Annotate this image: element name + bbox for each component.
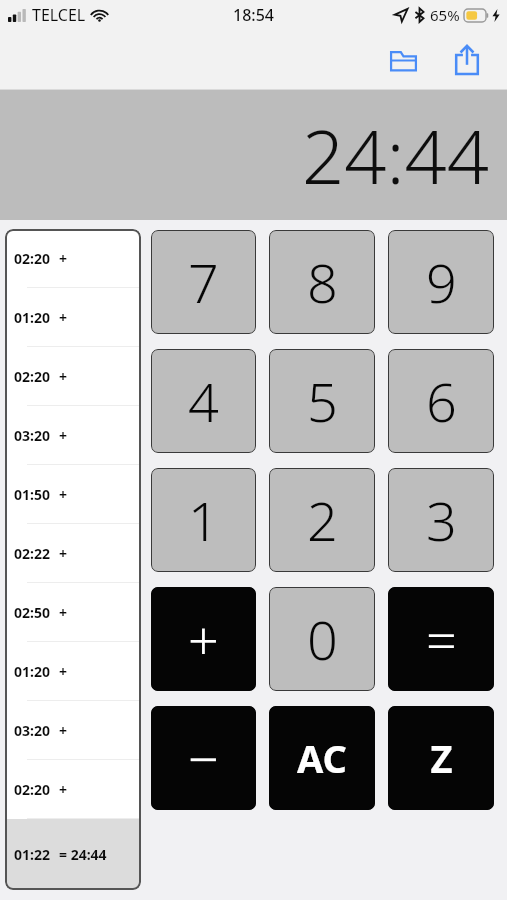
staticText: 18:54: [233, 4, 274, 26]
staticText: TELCEL: [32, 4, 86, 26]
staticText: 24:44: [301, 105, 489, 206]
staticText: 01:20: [14, 662, 50, 681]
button[interactable]: AC: [269, 706, 375, 810]
staticText: 03:20: [14, 426, 50, 445]
staticText: +: [59, 603, 68, 622]
button[interactable]: Share: [445, 38, 489, 82]
button[interactable]: 9: [388, 230, 494, 334]
staticText: = 24:44: [59, 845, 107, 864]
staticText: −: [188, 721, 219, 795]
button[interactable]: 5: [269, 349, 375, 453]
staticText: 1: [188, 483, 219, 557]
staticText: 2: [307, 483, 338, 557]
button[interactable]: 7: [151, 230, 256, 334]
staticText: +: [59, 426, 68, 445]
staticText: 4: [188, 364, 219, 438]
staticText: +: [188, 602, 219, 676]
button[interactable]: Z: [388, 706, 494, 810]
staticText: AC: [297, 732, 347, 784]
button[interactable]: =: [388, 587, 494, 691]
button[interactable]: 2: [269, 468, 375, 572]
button[interactable]: 03:20: [5, 406, 141, 465]
staticText: Z: [430, 732, 453, 784]
staticText: +: [59, 662, 68, 681]
staticText: 8: [307, 245, 338, 319]
staticText: 3: [426, 483, 457, 557]
staticText: =: [426, 602, 457, 676]
button[interactable]: 0: [269, 587, 375, 691]
staticText: 01:50: [14, 485, 50, 504]
button[interactable]: 02:20: [5, 760, 141, 819]
staticText: 9: [426, 245, 457, 319]
staticText: 02:20: [14, 780, 50, 799]
staticText: 6: [426, 364, 457, 438]
staticText: +: [59, 485, 68, 504]
button[interactable]: 02:50: [5, 583, 141, 642]
button[interactable]: 01:20: [5, 288, 141, 347]
staticText: 02:20: [14, 367, 50, 386]
button[interactable]: −: [151, 706, 256, 810]
button[interactable]: 6: [388, 349, 494, 453]
staticText: +: [59, 721, 68, 740]
staticText: 65%: [430, 5, 460, 25]
staticText: 02:22: [14, 544, 50, 563]
button[interactable]: 3: [388, 468, 494, 572]
button[interactable]: 01:50: [5, 465, 141, 524]
button[interactable]: 1: [151, 468, 256, 572]
staticText: 02:20: [14, 249, 50, 268]
button[interactable]: 02:20: [5, 347, 141, 406]
button[interactable]: Open folder: [381, 38, 425, 82]
button[interactable]: 01:22: [5, 819, 141, 890]
staticText: +: [59, 308, 68, 327]
button[interactable]: +: [151, 587, 256, 691]
staticText: 01:20: [14, 308, 50, 327]
staticText: 02:50: [14, 603, 50, 622]
staticText: 7: [188, 245, 219, 319]
staticText: +: [59, 544, 68, 563]
button[interactable]: 8: [269, 230, 375, 334]
button[interactable]: 01:20: [5, 642, 141, 701]
staticText: +: [59, 367, 68, 386]
button[interactable]: 4: [151, 349, 256, 453]
staticText: 5: [307, 364, 338, 438]
staticText: 0: [307, 602, 338, 676]
staticText: 01:22: [14, 845, 50, 864]
staticText: +: [59, 249, 68, 268]
button[interactable]: 03:20: [5, 701, 141, 760]
button[interactable]: 02:22: [5, 524, 141, 583]
staticText: 03:20: [14, 721, 50, 740]
button[interactable]: 02:20: [5, 229, 141, 288]
staticText: +: [59, 780, 68, 799]
